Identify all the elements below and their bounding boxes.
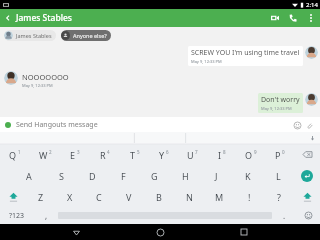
button[interactable]: Emoji (296, 207, 320, 224)
button[interactable]: Y (149, 144, 178, 165)
button[interactable]: ? (264, 186, 294, 207)
staticText: 2 (49, 149, 52, 155)
staticText: , (45, 210, 48, 221)
staticText: 0 (282, 149, 285, 155)
staticText: P (275, 149, 281, 161)
staticText: S (59, 170, 64, 182)
button[interactable]: NOOOOOOO (22, 71, 69, 89)
button[interactable]: ?123 (0, 207, 34, 224)
button[interactable]: S (45, 165, 77, 186)
staticText: James Stables (16, 12, 72, 24)
button[interactable]: I (207, 144, 236, 165)
button[interactable]: SCREW YOU I'm using time travel (188, 46, 303, 66)
staticText: May 9, 12:33 PM (261, 106, 292, 111)
button[interactable]: J (201, 165, 232, 186)
staticText: L (276, 170, 281, 182)
button[interactable]: Backspace (294, 144, 320, 165)
staticText: C (96, 191, 102, 203)
staticText: 5 (137, 149, 140, 155)
staticText: 3 (77, 149, 80, 155)
button[interactable]: Shift (294, 186, 320, 207)
button[interactable]: M (204, 186, 234, 207)
button[interactable]: F (108, 165, 139, 186)
button[interactable]: G (139, 165, 170, 186)
staticText: James Stables (16, 32, 52, 39)
staticText: M (215, 191, 224, 203)
button[interactable]: Q (0, 144, 30, 165)
button[interactable]: C (84, 186, 114, 207)
button[interactable]: Emoji (291, 119, 303, 131)
staticText: X (67, 191, 73, 203)
staticText: G (151, 170, 158, 182)
button[interactable]: R (90, 144, 120, 165)
staticText: May 9, 12:33 PM (191, 59, 222, 64)
button[interactable]: Back (68, 224, 84, 240)
staticText: ? (277, 191, 281, 203)
button[interactable]: W (30, 144, 60, 165)
button[interactable]: Shift (0, 186, 26, 207)
button[interactable]: Send Hangouts message (16, 120, 291, 130)
button[interactable]: Home (152, 224, 168, 240)
button[interactable]: ! (234, 186, 264, 207)
button[interactable]: Video call (266, 9, 284, 27)
staticText: 9 (254, 149, 257, 155)
button[interactable]: T (120, 144, 149, 165)
staticText: B (156, 191, 162, 203)
staticText: Z (38, 191, 44, 203)
staticText: N (186, 191, 193, 203)
button[interactable]: L (263, 165, 294, 186)
staticText: E (70, 149, 76, 161)
staticText: 6 (166, 149, 169, 155)
staticText: . (283, 210, 286, 221)
button[interactable]: D (77, 165, 108, 186)
button[interactable]: E (60, 144, 90, 165)
button[interactable]: , (34, 207, 58, 224)
button[interactable]: V (114, 186, 144, 207)
staticText: 2:14 (306, 1, 318, 9)
button[interactable]: Back (0, 10, 16, 26)
button[interactable]: Call (284, 9, 302, 27)
staticText: R (100, 149, 106, 161)
button[interactable]: U (178, 144, 207, 165)
button[interactable]: A (13, 165, 45, 186)
staticText: I (218, 149, 222, 161)
button[interactable]: O (236, 144, 265, 165)
staticText: U (187, 149, 194, 161)
staticText: May 9, 12:33 PM (22, 83, 53, 88)
staticText: Y (159, 149, 165, 161)
button[interactable]: X (55, 186, 84, 207)
staticText: 4 (107, 149, 110, 155)
button[interactable]: Enter (294, 165, 320, 186)
staticText: O (245, 149, 253, 161)
button[interactable]: Anyone else? (61, 30, 111, 41)
button[interactable]: Attach (303, 119, 315, 131)
button[interactable]: Z (26, 186, 55, 207)
button[interactable]: B (144, 186, 174, 207)
staticText: W (39, 149, 48, 161)
button[interactable]: N (174, 186, 204, 207)
button[interactable]: James Stables (4, 30, 56, 41)
staticText: SCREW YOU I'm using time travel (191, 48, 300, 58)
button[interactable]: Don't worry (258, 93, 303, 113)
staticText: K (245, 170, 251, 182)
staticText: Q (9, 149, 17, 161)
button[interactable]: H (170, 165, 201, 186)
staticText: Anyone else? (73, 32, 107, 39)
staticText: F (121, 170, 126, 182)
staticText: J (215, 170, 218, 182)
button[interactable]: Recents (236, 224, 252, 240)
staticText: ! (248, 191, 251, 203)
button[interactable]: More options (302, 9, 320, 27)
staticText: Don't worry (261, 95, 300, 105)
staticText: ?123 (9, 211, 25, 221)
button[interactable]: K (232, 165, 263, 186)
button[interactable]: P (265, 144, 294, 165)
button[interactable]: Hide keyboard (308, 134, 316, 142)
staticText: Send Hangouts message (16, 120, 98, 130)
staticText: NOOOOOOO (22, 72, 69, 82)
staticText: V (126, 191, 132, 203)
button[interactable]: Hangouts (5, 122, 11, 128)
button[interactable]: . (272, 207, 296, 224)
staticText: A (26, 170, 32, 182)
